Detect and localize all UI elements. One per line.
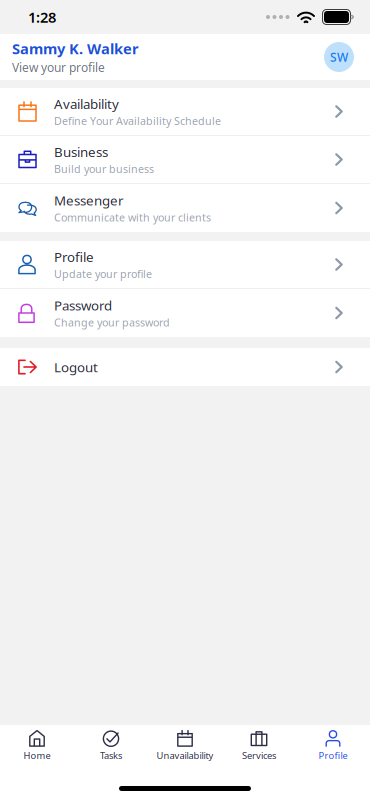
staticText: SW	[330, 49, 348, 65]
button[interactable]: Availability	[0, 88, 370, 136]
button[interactable]: Password	[0, 289, 370, 337]
staticText: Availability	[54, 95, 119, 113]
staticText: Update your profile	[54, 267, 152, 281]
staticText: Profile	[54, 248, 94, 266]
button[interactable]: Business	[0, 136, 370, 184]
staticText: Build your business	[54, 162, 154, 176]
button[interactable]: Profile	[296, 723, 370, 769]
staticText: Sammy K. Walker	[12, 39, 139, 58]
staticText: Logout	[54, 358, 98, 376]
button[interactable]: SW	[324, 42, 354, 72]
button[interactable]: Home	[0, 723, 74, 769]
button[interactable]: Messenger	[0, 184, 370, 232]
staticText: Unavailability	[156, 749, 213, 762]
staticText: Business	[54, 143, 108, 161]
staticText: Change your password	[54, 315, 170, 329]
staticText: Home	[23, 749, 50, 762]
staticText: Profile	[318, 749, 347, 762]
staticText: 1:28	[28, 7, 56, 27]
button[interactable]: Profile	[0, 241, 370, 289]
staticText: Messenger	[54, 192, 124, 209]
button[interactable]: Tasks	[74, 723, 148, 769]
staticText: Define Your Availability Schedule	[54, 114, 221, 128]
staticText: Tasks	[100, 749, 122, 762]
staticText: Password	[54, 297, 112, 314]
staticText: View your profile	[12, 59, 105, 75]
button[interactable]: Unavailability	[148, 723, 222, 769]
button[interactable]: Services	[222, 723, 296, 769]
staticText: Communicate with your clients	[54, 210, 211, 224]
button[interactable]: Logout	[0, 348, 370, 386]
staticText: Services	[242, 749, 276, 762]
